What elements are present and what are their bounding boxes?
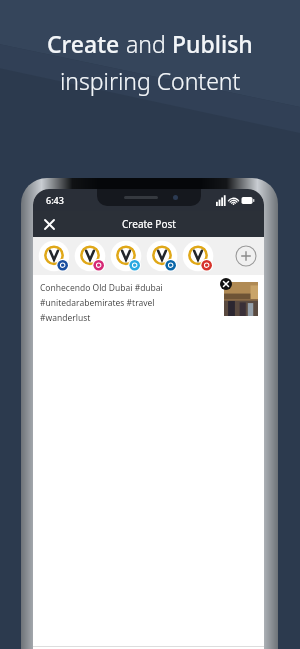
button[interactable]: Add account <box>235 245 257 267</box>
staticText: #unitedarabemirates #travel <box>40 297 155 309</box>
staticText: #wanderlust <box>40 312 91 324</box>
button[interactable]: Account 2 <box>73 239 107 273</box>
button[interactable]: Account 4 <box>145 239 179 273</box>
button[interactable]: Account 5 <box>181 239 215 273</box>
staticText: Create Post <box>122 217 176 231</box>
button[interactable]: Remove image <box>220 278 232 290</box>
button[interactable]: Close <box>39 214 59 234</box>
staticText: Publish <box>172 28 253 59</box>
button[interactable]: Account 3 <box>109 239 143 273</box>
staticText: and <box>120 28 172 59</box>
staticText: 6:43 <box>46 194 64 206</box>
staticText: Create <box>47 28 120 59</box>
button[interactable]: Account 1 <box>37 239 71 273</box>
staticText: Conhecendo Old Dubai #dubai <box>40 282 163 294</box>
staticText: inspiring Content <box>60 65 241 96</box>
